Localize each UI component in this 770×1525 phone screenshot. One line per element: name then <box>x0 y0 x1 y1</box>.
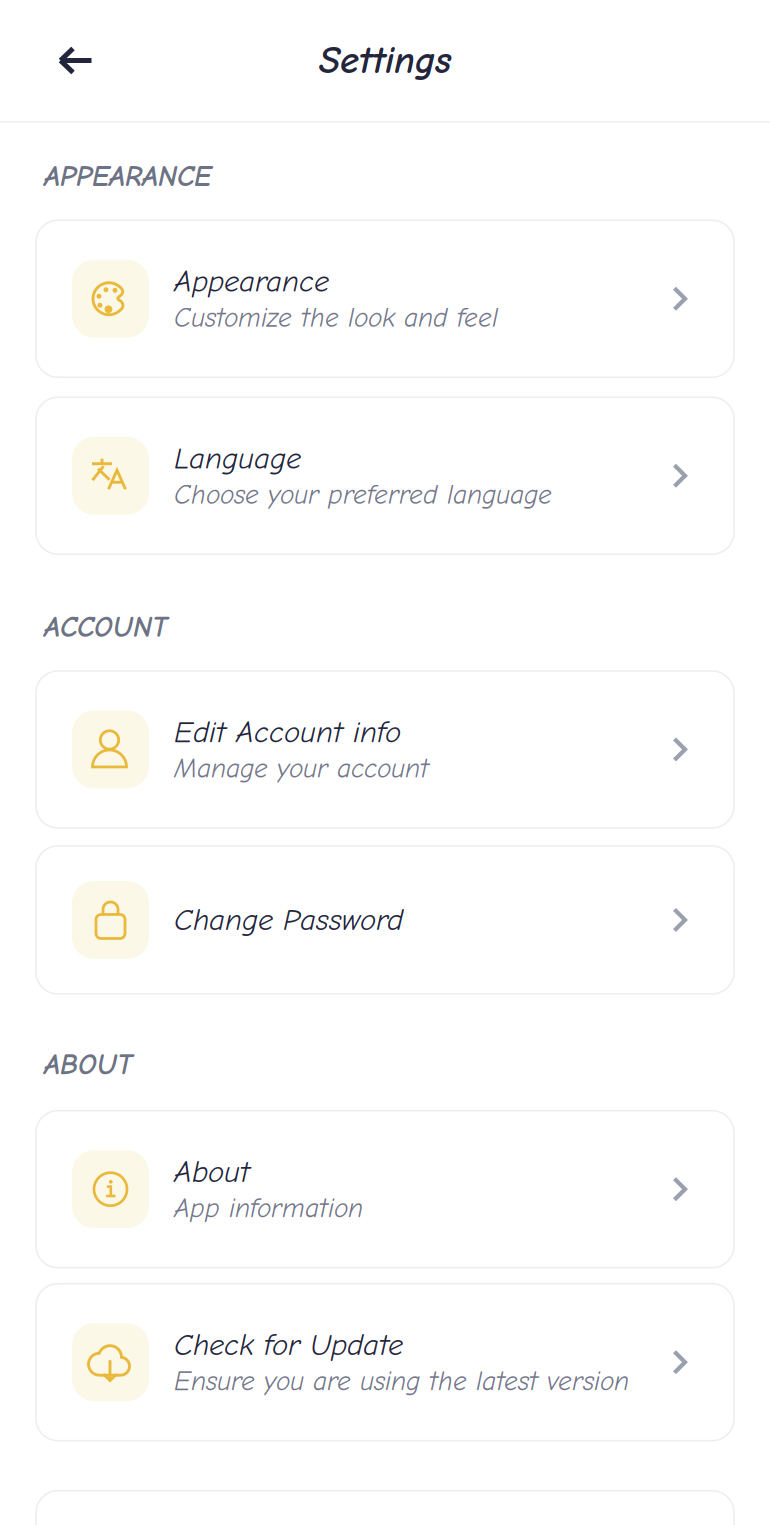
button[interactable]: Back <box>36 26 116 94</box>
button[interactable]: Language <box>36 397 734 554</box>
staticText: Check for Update <box>174 1327 403 1363</box>
button[interactable]: Check for Update <box>36 1284 734 1441</box>
staticText: Appearance <box>174 264 329 299</box>
staticText: Manage your account <box>174 753 429 784</box>
button[interactable]: Edit Account info <box>36 671 734 828</box>
staticText: Settings <box>319 38 451 83</box>
button[interactable]: About <box>36 1111 734 1268</box>
staticText: Change Password <box>174 902 403 938</box>
staticText: Customize the look and feel <box>174 302 498 333</box>
staticText: Edit Account info <box>174 715 401 750</box>
button[interactable]: Appearance <box>36 220 734 377</box>
staticText: ABOUT <box>44 1048 132 1082</box>
staticText: Language <box>174 441 301 476</box>
staticText: APPEARANCE <box>44 159 211 193</box>
button[interactable]: Change Password <box>36 846 734 994</box>
staticText: Ensure you are using the latest version <box>174 1366 629 1397</box>
staticText: App information <box>174 1193 363 1224</box>
staticText: Choose your preferred language <box>174 479 552 510</box>
staticText: ACCOUNT <box>44 610 167 644</box>
staticText: About <box>174 1154 250 1190</box>
